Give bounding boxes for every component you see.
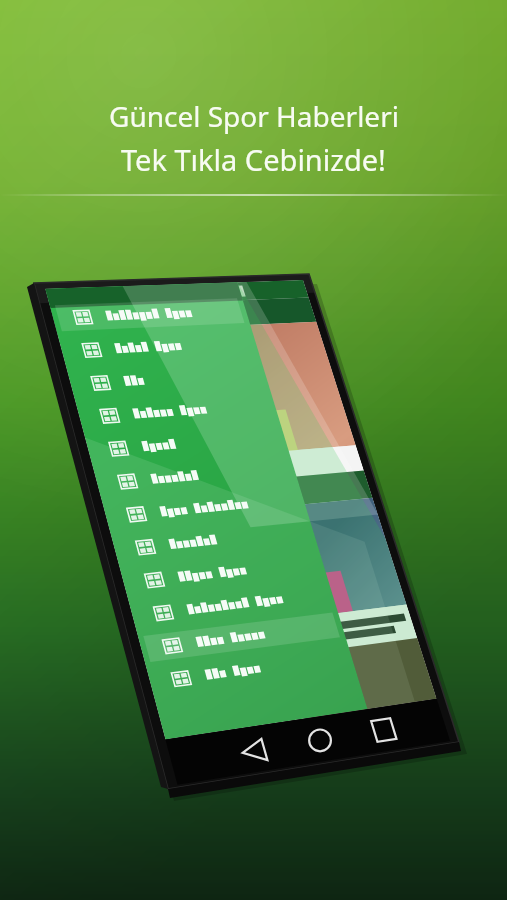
button[interactable]: Uygulama ekran görüntüsü xyxy=(36,275,456,795)
staticText: Tek Tıkla Cebinizde! xyxy=(121,140,386,179)
staticText: Güncel Spor Haberleri xyxy=(109,97,399,135)
